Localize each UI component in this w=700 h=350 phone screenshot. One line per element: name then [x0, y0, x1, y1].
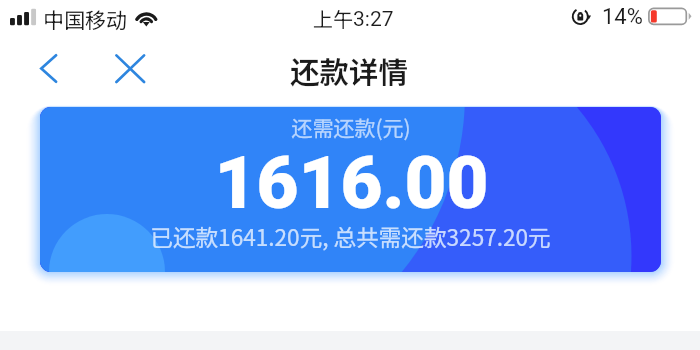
staticText: 还款详情 [290, 49, 409, 92]
button[interactable]: Close [103, 47, 158, 93]
staticText: 已还款1641.20元, 总共需还款3257.20元 [150, 220, 551, 253]
button[interactable]: 还需还款(元) [40, 107, 661, 272]
staticText: 14% [602, 4, 643, 30]
staticText: 上午 [313, 4, 353, 33]
button[interactable]: Back [26, 47, 72, 93]
staticText: 1616.00 [214, 141, 489, 226]
staticText: 还需还款(元) [291, 112, 411, 142]
staticText: 3:27 [353, 7, 394, 32]
staticText: 中国移动 [43, 4, 127, 34]
